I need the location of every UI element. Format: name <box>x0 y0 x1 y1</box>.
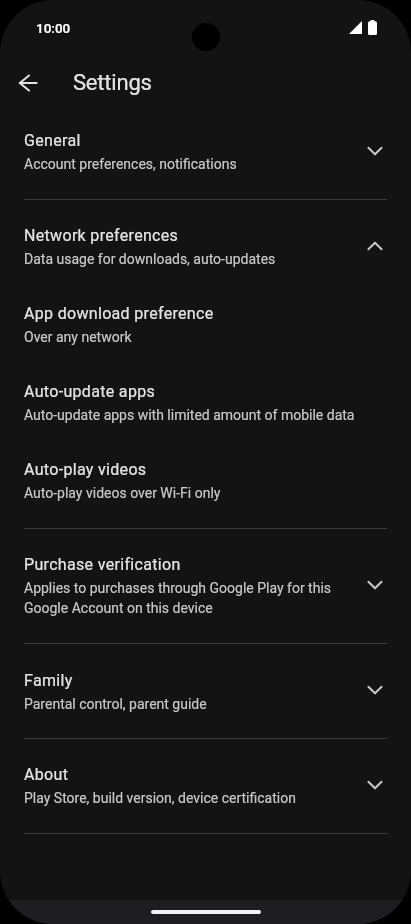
staticText: 10:00 <box>36 20 71 36</box>
button[interactable]: Expand section <box>351 761 399 809</box>
staticText: Family <box>24 671 73 690</box>
staticText: Data usage for downloads, auto-updates <box>24 251 276 267</box>
button[interactable]: General <box>0 113 411 191</box>
staticText: Auto-play videos over Wi-Fi only <box>24 485 221 501</box>
staticText: Auto-play videos <box>24 460 147 479</box>
staticText: App download preference <box>24 304 214 323</box>
button[interactable]: About <box>0 747 411 825</box>
button[interactable]: Auto-play videos <box>0 442 411 520</box>
staticText: Auto-update apps <box>24 382 156 401</box>
staticText: Over any network <box>24 329 132 345</box>
button[interactable]: Network preferences <box>0 208 411 286</box>
staticText: Settings <box>73 70 152 96</box>
staticText: Applies to purchases through Google Play… <box>24 580 332 616</box>
button[interactable]: Family <box>0 652 411 730</box>
staticText: Auto-update apps with limited amount of … <box>24 407 355 423</box>
staticText: General <box>24 131 81 150</box>
staticText: About <box>24 765 69 784</box>
staticText: Parental control, parent guide <box>24 696 207 712</box>
button[interactable]: Expand section <box>351 666 399 714</box>
staticText: Purchase verification <box>24 555 181 574</box>
staticText: Account preferences, notifications <box>24 156 237 172</box>
button[interactable]: Expand section <box>351 127 399 175</box>
button[interactable]: App download preference <box>0 286 411 364</box>
button[interactable]: Purchase verification <box>0 537 411 635</box>
button[interactable]: Navigate up <box>4 59 52 107</box>
button[interactable]: Collapse section <box>351 222 399 270</box>
button[interactable]: Expand section <box>351 561 399 609</box>
staticText: Network preferences <box>24 226 179 245</box>
button[interactable]: Auto-update apps <box>0 364 411 442</box>
staticText: Play Store, build version, device certif… <box>24 790 296 806</box>
